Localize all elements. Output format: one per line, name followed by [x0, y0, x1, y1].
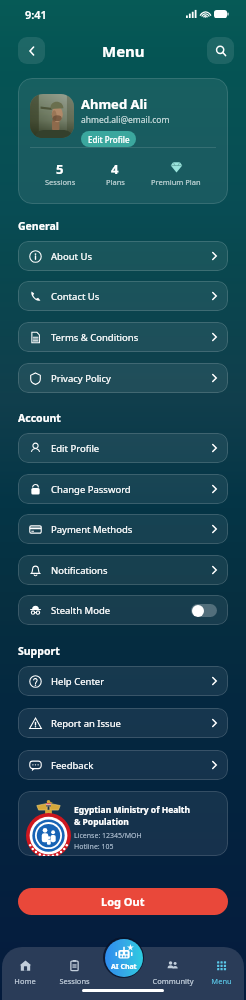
- staticText: Support: [18, 644, 60, 658]
- button[interactable]: Log Out: [18, 888, 228, 915]
- staticText: Report an Issue: [51, 717, 121, 730]
- button[interactable]: Notifications: [18, 555, 228, 585]
- button[interactable]: Payment Methods: [18, 514, 228, 544]
- button[interactable]: Home: [0, 957, 50, 986]
- button[interactable]: Egyptian Ministry of Health: [18, 791, 228, 856]
- staticText: About Us: [51, 250, 92, 263]
- staticText: Menu: [211, 976, 232, 986]
- button[interactable]: Sessions: [50, 957, 99, 986]
- staticText: 9:41: [25, 7, 47, 22]
- staticText: Notifications: [51, 564, 108, 577]
- staticText: Account: [18, 411, 61, 425]
- button[interactable]: Terms & Conditions: [18, 322, 228, 352]
- button[interactable]: AI Chat: [105, 939, 143, 977]
- button[interactable]: Report an Issue: [18, 708, 228, 738]
- button[interactable]: Feedback: [18, 750, 228, 780]
- button[interactable]: Contact Us: [18, 281, 228, 311]
- staticText: General: [18, 219, 59, 233]
- button[interactable]: Community: [148, 957, 197, 986]
- staticText: Help Center: [51, 675, 105, 688]
- staticText: Terms & Conditions: [51, 331, 139, 344]
- staticText: Egyptian Ministry of Health: [74, 804, 191, 816]
- button[interactable]: Menu: [197, 957, 246, 986]
- button[interactable]: Edit Profile: [81, 131, 136, 147]
- staticText: 4: [111, 160, 119, 178]
- button[interactable]: Help Center: [18, 666, 228, 696]
- staticText: Edit Profile: [88, 134, 130, 145]
- staticText: Edit Profile: [51, 442, 100, 455]
- staticText: Premium Plan: [151, 177, 201, 187]
- staticText: Sessions: [59, 976, 90, 986]
- staticText: Change Password: [51, 483, 131, 496]
- staticText: Stealth Mode: [51, 604, 111, 617]
- button[interactable]: Back: [18, 37, 45, 64]
- staticText: Home: [14, 976, 36, 986]
- button[interactable]: Stealth Mode: [18, 595, 228, 625]
- staticText: License: 12345/MOH: [74, 831, 142, 841]
- staticText: Hotline: 105: [74, 842, 114, 852]
- staticText: Ahmed Ali: [81, 95, 148, 113]
- staticText: Privacy Policy: [51, 372, 111, 385]
- staticText: Sessions: [45, 177, 76, 187]
- button[interactable]: Edit Profile: [18, 433, 228, 463]
- staticText: 5: [56, 160, 64, 178]
- staticText: Log Out: [101, 894, 145, 909]
- staticText: AI Chat: [111, 962, 137, 972]
- button[interactable]: Privacy Policy: [18, 363, 228, 393]
- staticText: & Population: [74, 816, 129, 828]
- button[interactable]: Search: [207, 37, 234, 64]
- staticText: Community: [152, 976, 194, 986]
- staticText: Contact Us: [51, 290, 100, 303]
- staticText: Plans: [106, 177, 125, 187]
- staticText: ahmed.ali@email.com: [81, 114, 170, 126]
- staticText: Menu: [102, 41, 145, 61]
- staticText: Payment Methods: [51, 523, 133, 536]
- staticText: Feedback: [51, 759, 94, 772]
- button[interactable]: Change Password: [18, 474, 228, 504]
- button[interactable]: About Us: [18, 241, 228, 271]
